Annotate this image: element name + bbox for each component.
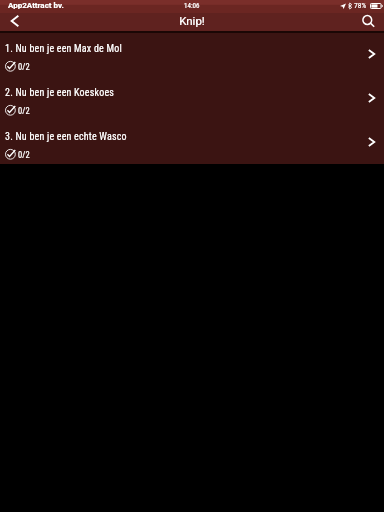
- staticText: 3. Nu ben je een echte Wasco: [5, 131, 127, 143]
- staticText: 14:06: [184, 2, 200, 10]
- staticText: 0/2: [18, 106, 30, 116]
- button[interactable]: 1. Nu ben je een Max de Mol: [0, 33, 384, 77]
- staticText: Knip!: [179, 14, 205, 27]
- staticText: 1. Nu ben je een Max de Mol: [5, 43, 122, 55]
- staticText: App2Attract bv.: [8, 1, 64, 10]
- staticText: 2. Nu ben je een Koeskoes: [5, 87, 115, 99]
- button[interactable]: 3. Nu ben je een echte Wasco: [0, 121, 384, 164]
- staticText: 0/2: [18, 62, 30, 72]
- button[interactable]: Back: [0, 13, 30, 31]
- staticText: 78%: [354, 1, 367, 10]
- staticText: 0/2: [18, 150, 30, 160]
- button[interactable]: 2. Nu ben je een Koeskoes: [0, 77, 384, 121]
- button[interactable]: Search: [360, 14, 380, 31]
